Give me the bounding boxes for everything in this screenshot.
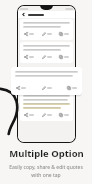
button[interactable]: Share [20,19,73,40]
button[interactable]: Edit [41,54,53,60]
button[interactable]: Share [23,54,35,60]
button[interactable]: Share [11,67,82,95]
button[interactable]: Share [23,112,35,118]
button[interactable]: Back [21,12,26,17]
button[interactable]: Share [20,42,73,63]
button[interactable]: Copy [58,54,70,60]
button[interactable]: Edit [41,31,53,37]
button[interactable]: Copy [66,85,78,91]
button[interactable]: Edit [41,85,53,91]
button[interactable]: Copy [58,112,70,118]
button[interactable]: Share [15,85,27,91]
button[interactable]: Share [23,31,35,37]
staticText: Easily copy, share & edit quotes [9,164,83,171]
button[interactable]: Copy [58,31,70,37]
button[interactable]: Share [20,92,73,121]
button[interactable]: Edit [41,112,53,118]
staticText: Multiple Option [9,147,84,160]
staticText: with one tap [31,172,61,179]
